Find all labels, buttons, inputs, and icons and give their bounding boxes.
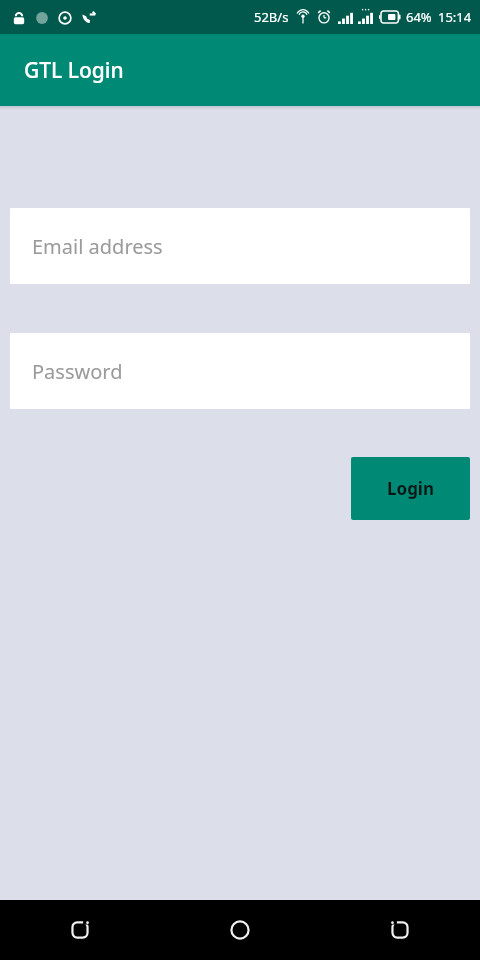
staticText: Password xyxy=(32,358,123,385)
staticText: Email address xyxy=(32,233,163,260)
staticText: Login xyxy=(387,477,435,500)
button[interactable]: Back xyxy=(320,900,480,960)
button[interactable]: Login xyxy=(351,457,470,520)
staticText: 15:14 xyxy=(438,8,472,26)
button[interactable]: Recent apps xyxy=(0,900,160,960)
button[interactable]: Home xyxy=(160,900,320,960)
button[interactable]: Email address xyxy=(10,208,470,284)
staticText: GTL Login xyxy=(24,56,124,85)
staticText: 52B/s xyxy=(254,8,289,26)
button[interactable]: Password xyxy=(10,333,470,409)
staticText: 64% xyxy=(406,8,432,26)
